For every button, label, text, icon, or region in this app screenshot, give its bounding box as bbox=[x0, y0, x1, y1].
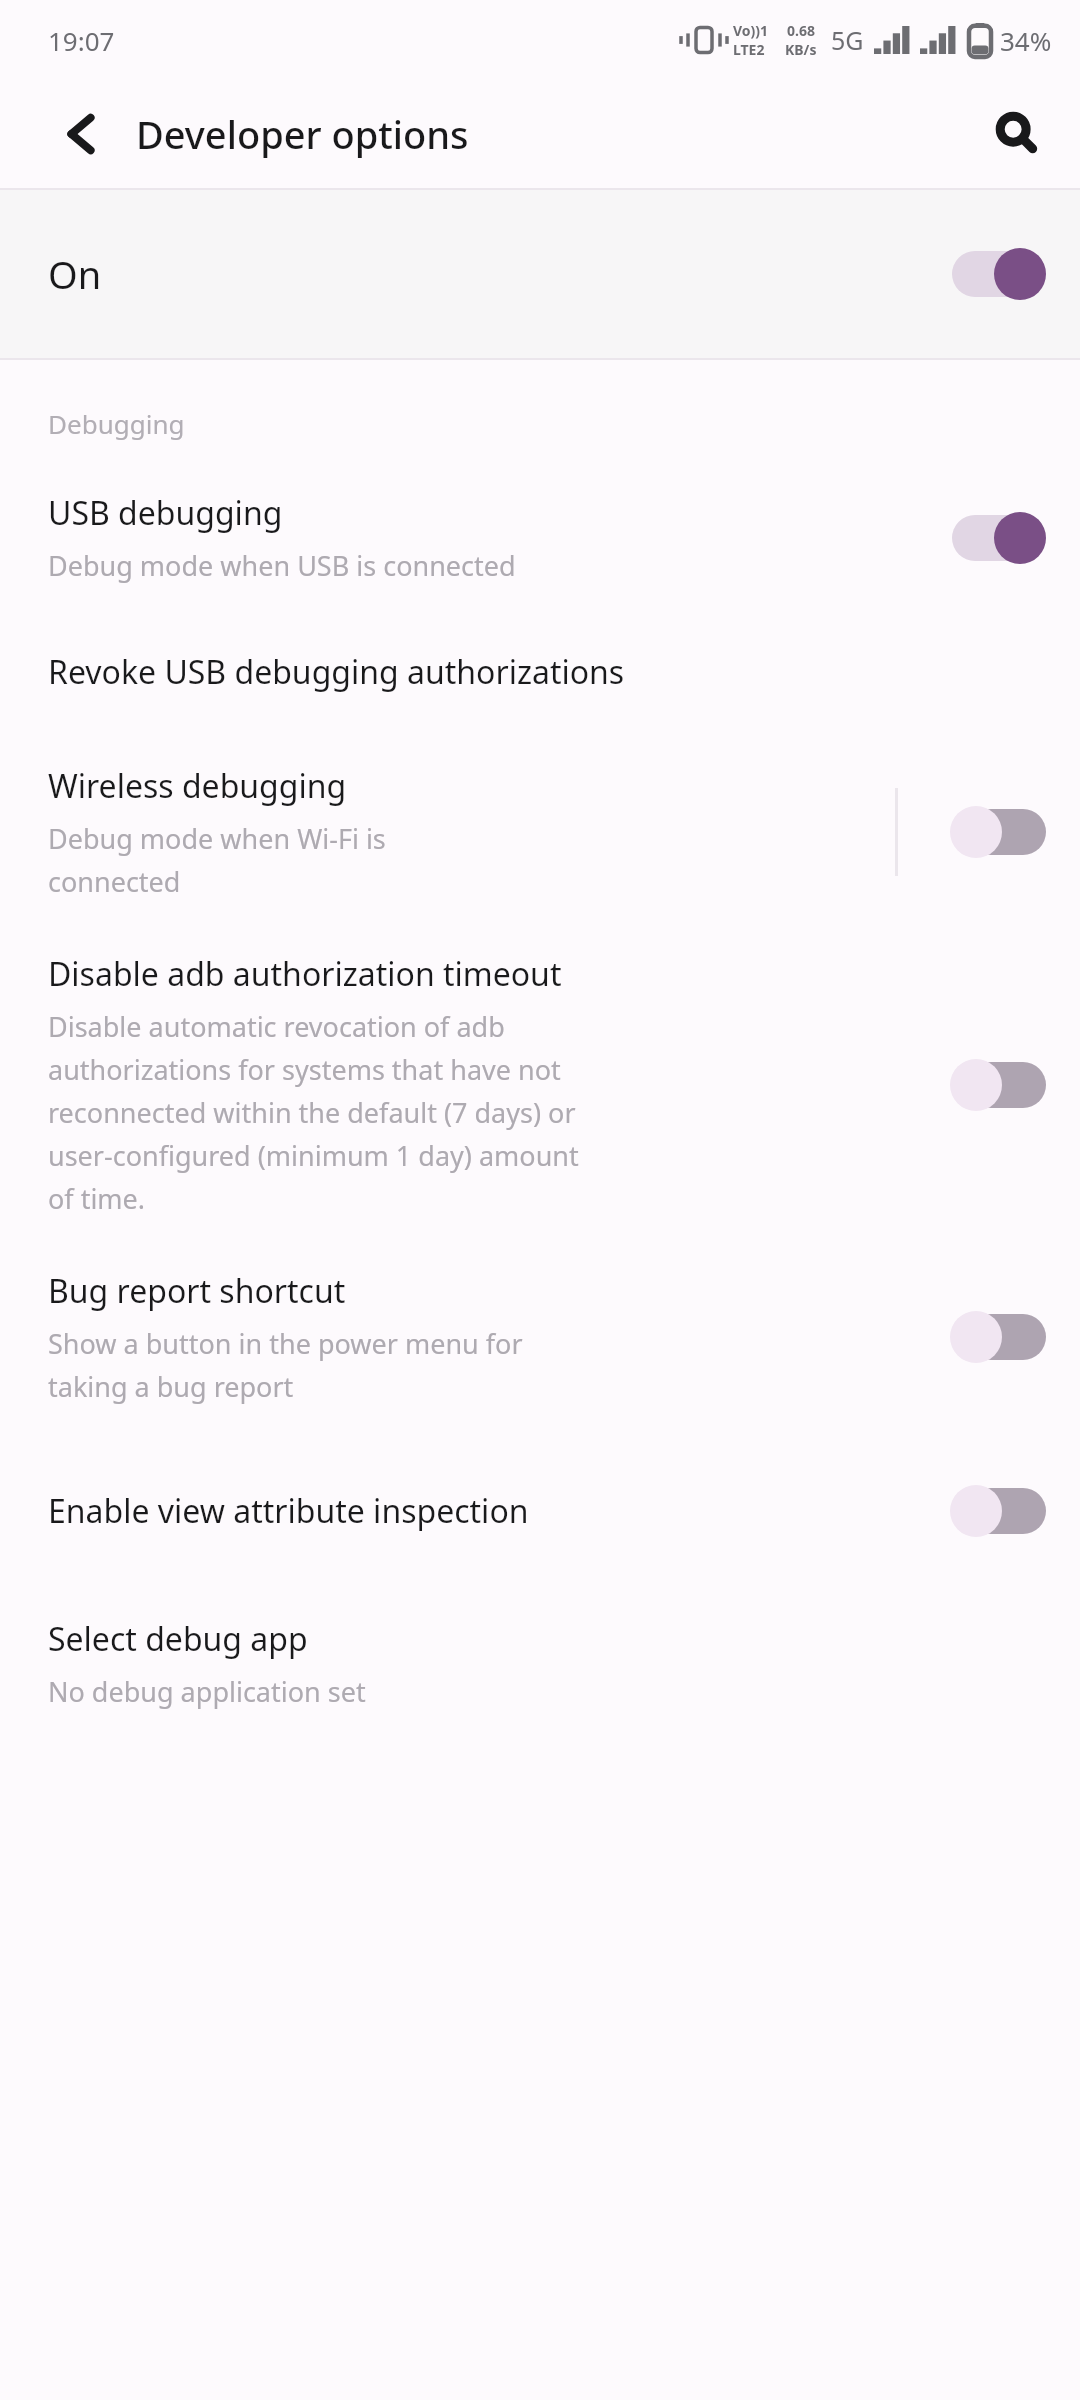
staticText: Debug mode when USB is connected bbox=[48, 547, 516, 584]
staticText: Show a button in the power menu for taki… bbox=[48, 1325, 523, 1405]
staticText: Disable adb authorization timeout bbox=[48, 952, 562, 996]
button[interactable]: Wireless debugging bbox=[0, 738, 1080, 926]
staticText: LTE2 bbox=[733, 40, 765, 59]
button[interactable]: Bug report shortcut bbox=[0, 1243, 1080, 1431]
staticText: No debug application set bbox=[48, 1673, 366, 1710]
button[interactable]: Wireless debugging bbox=[946, 796, 1050, 868]
button[interactable]: Enable view attribute inspection bbox=[0, 1431, 1080, 1591]
staticText: Vo))1 bbox=[733, 21, 769, 40]
staticText: Disable automatic revocation of adb auth… bbox=[48, 1008, 579, 1217]
button[interactable]: Search bbox=[980, 97, 1054, 171]
button[interactable]: Bug report shortcut bbox=[946, 1301, 1050, 1373]
button[interactable]: USB debugging bbox=[946, 502, 1050, 574]
button[interactable]: Select debug app bbox=[0, 1591, 1080, 1740]
button[interactable]: Back bbox=[52, 105, 110, 163]
staticText: Developer options bbox=[136, 108, 980, 160]
button[interactable]: Developer options bbox=[946, 248, 1050, 300]
staticText: Bug report shortcut bbox=[48, 1269, 346, 1313]
staticText: KB/s bbox=[785, 40, 817, 59]
button[interactable]: Disable adb authorization timeout bbox=[0, 926, 1080, 1243]
staticText: Debugging bbox=[48, 406, 185, 441]
staticText: Wireless debugging bbox=[48, 764, 347, 808]
staticText: USB debugging bbox=[48, 491, 283, 535]
button[interactable]: Disable adb authorization timeout bbox=[946, 1049, 1050, 1121]
button[interactable]: Enable view attribute inspection bbox=[946, 1475, 1050, 1547]
staticText: 34% bbox=[1000, 23, 1052, 58]
staticText: 5G bbox=[831, 23, 864, 57]
staticText: On bbox=[48, 248, 946, 300]
staticText: Enable view attribute inspection bbox=[48, 1489, 529, 1533]
button[interactable]: USB debugging bbox=[0, 473, 1080, 606]
button[interactable]: On bbox=[0, 190, 1080, 358]
button[interactable]: Revoke USB debugging authorizations bbox=[0, 606, 1080, 738]
staticText: Revoke USB debugging authorizations bbox=[48, 650, 625, 694]
staticText: 0.68 bbox=[787, 21, 815, 40]
staticText: Debug mode when Wi-Fi is connected bbox=[48, 820, 386, 900]
staticText: 19:07 bbox=[48, 23, 115, 58]
staticText: Select debug app bbox=[48, 1617, 308, 1661]
